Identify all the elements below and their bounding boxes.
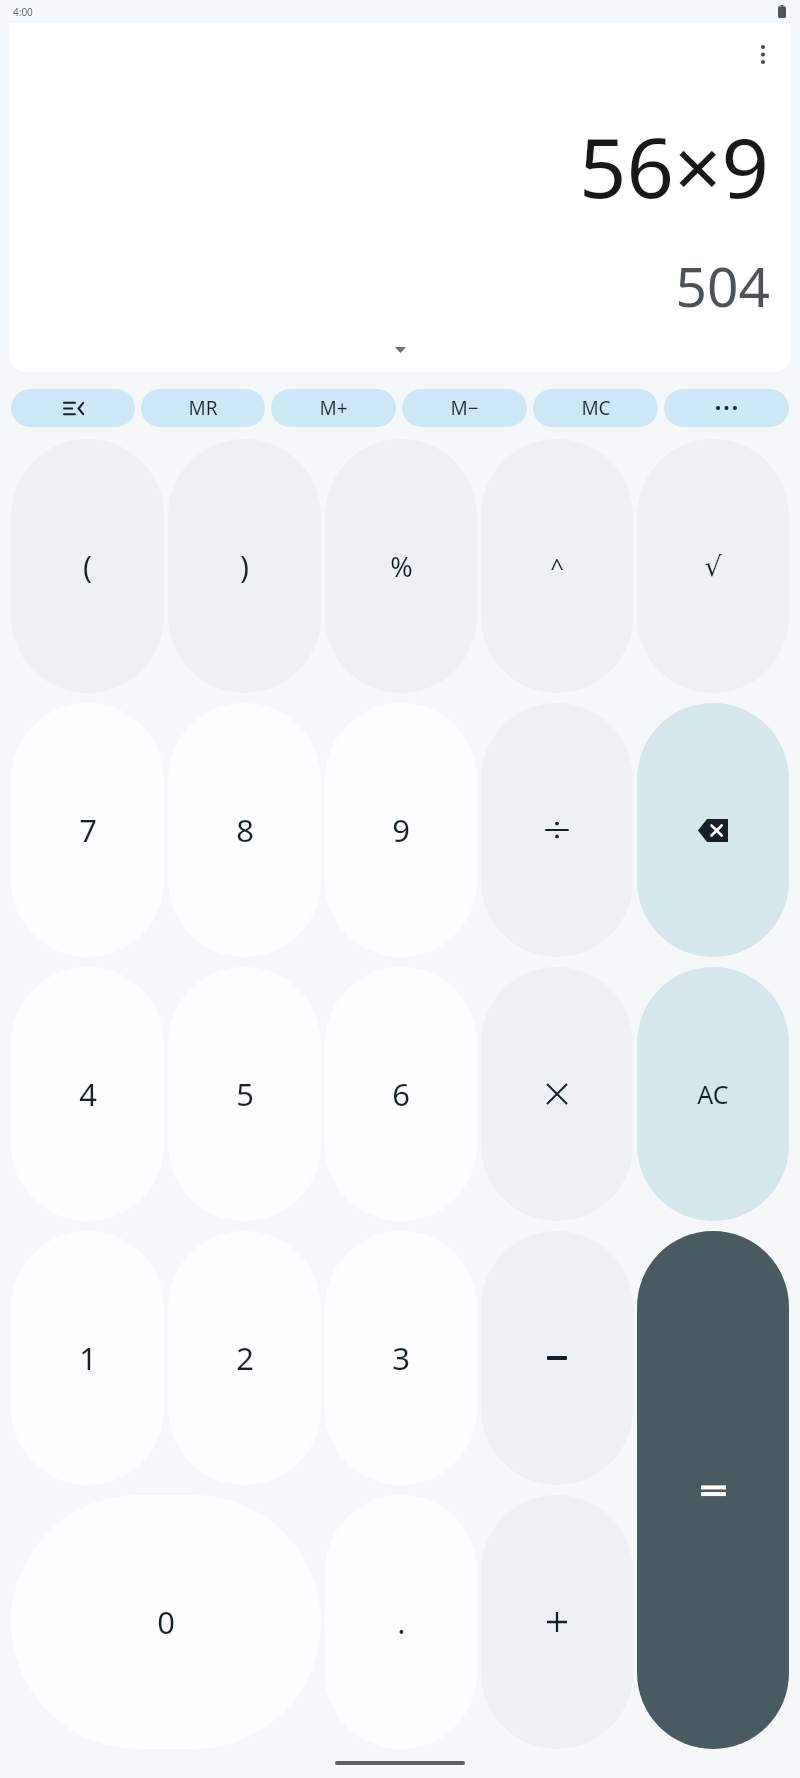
button[interactable]: 7 xyxy=(11,703,164,957)
staticText: M+ xyxy=(319,395,348,421)
button[interactable] xyxy=(481,703,633,957)
staticText: 0 xyxy=(157,1601,175,1643)
staticText: . xyxy=(397,1601,406,1643)
button[interactable]: % xyxy=(325,439,477,693)
button[interactable]: 3 xyxy=(325,1231,477,1485)
button[interactable]: 0 xyxy=(11,1495,321,1749)
staticText: 2 xyxy=(236,1337,254,1379)
staticText: 5 xyxy=(236,1073,254,1115)
staticText: 504 xyxy=(675,248,770,323)
button[interactable]: Backspace xyxy=(637,703,789,957)
button[interactable]: 5 xyxy=(168,967,321,1221)
button[interactable]: MC xyxy=(533,389,658,427)
staticText: ^ xyxy=(550,550,564,583)
staticText: 4:00 xyxy=(13,5,33,19)
staticText: 3 xyxy=(392,1337,410,1379)
button[interactable] xyxy=(481,1495,633,1749)
button[interactable] xyxy=(481,1231,633,1485)
button[interactable]: Equals xyxy=(637,1231,789,1749)
button[interactable]: 1 xyxy=(11,1231,164,1485)
button[interactable]: History xyxy=(11,389,135,427)
button[interactable] xyxy=(481,967,633,1221)
button[interactable]: 8 xyxy=(168,703,321,957)
button[interactable]: . xyxy=(325,1495,477,1749)
staticText: ( xyxy=(83,546,92,587)
button[interactable]: 6 xyxy=(325,967,477,1221)
button[interactable]: ) xyxy=(168,439,321,693)
staticText: ) xyxy=(240,546,249,587)
button[interactable]: MR xyxy=(141,389,265,427)
staticText: % xyxy=(390,548,413,585)
staticText: M− xyxy=(450,395,479,421)
staticText: 8 xyxy=(236,809,254,851)
staticText: MR xyxy=(188,395,218,421)
staticText: AC xyxy=(697,1077,729,1111)
staticText: √ xyxy=(704,551,722,582)
button[interactable]: More memory options xyxy=(664,389,789,427)
button[interactable]: ^ xyxy=(481,439,633,693)
staticText: 9 xyxy=(392,809,410,851)
button[interactable]: 4 xyxy=(11,967,164,1221)
staticText: 56×9 xyxy=(579,109,769,222)
staticText: 1 xyxy=(79,1337,97,1379)
button[interactable]: √ xyxy=(637,439,789,693)
staticText: 4 xyxy=(79,1073,97,1115)
button[interactable]: 9 xyxy=(325,703,477,957)
staticText: 6 xyxy=(392,1073,410,1115)
button[interactable]: ( xyxy=(11,439,164,693)
staticText: MC xyxy=(581,395,611,421)
button[interactable]: More options xyxy=(740,31,786,77)
button[interactable]: M− xyxy=(402,389,527,427)
button[interactable]: M+ xyxy=(271,389,396,427)
button[interactable]: AC xyxy=(637,967,789,1221)
button[interactable]: Expand xyxy=(383,340,417,360)
staticText: 7 xyxy=(79,809,97,851)
button[interactable]: 2 xyxy=(168,1231,321,1485)
